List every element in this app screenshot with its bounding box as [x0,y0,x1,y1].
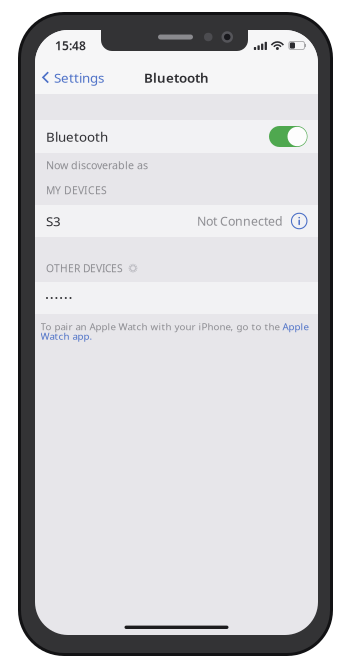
button[interactable]: Unnamed device [35,282,318,314]
staticText: Bluetooth [144,69,209,86]
button[interactable]: Bluetooth [35,120,318,153]
staticText: OTHER DEVICES [46,261,123,275]
staticText: Not Connected [197,213,283,229]
staticText: Watch app. [40,329,92,342]
button[interactable]: Apple [279,320,308,333]
staticText: Apple [279,320,308,333]
button[interactable]: Watch app. [40,329,92,342]
staticText: Settings [54,69,104,86]
button[interactable]: Settings [35,63,112,92]
staticText: Now discoverable as [46,158,148,172]
staticText: 15:48 [55,37,86,53]
button[interactable]: S3 [35,205,318,237]
staticText: MY DEVICES [46,183,107,197]
staticText: To pair an Apple Watch with your iPhone,… [40,320,279,333]
staticText: S3 [46,212,61,230]
staticText: Bluetooth [46,128,108,145]
